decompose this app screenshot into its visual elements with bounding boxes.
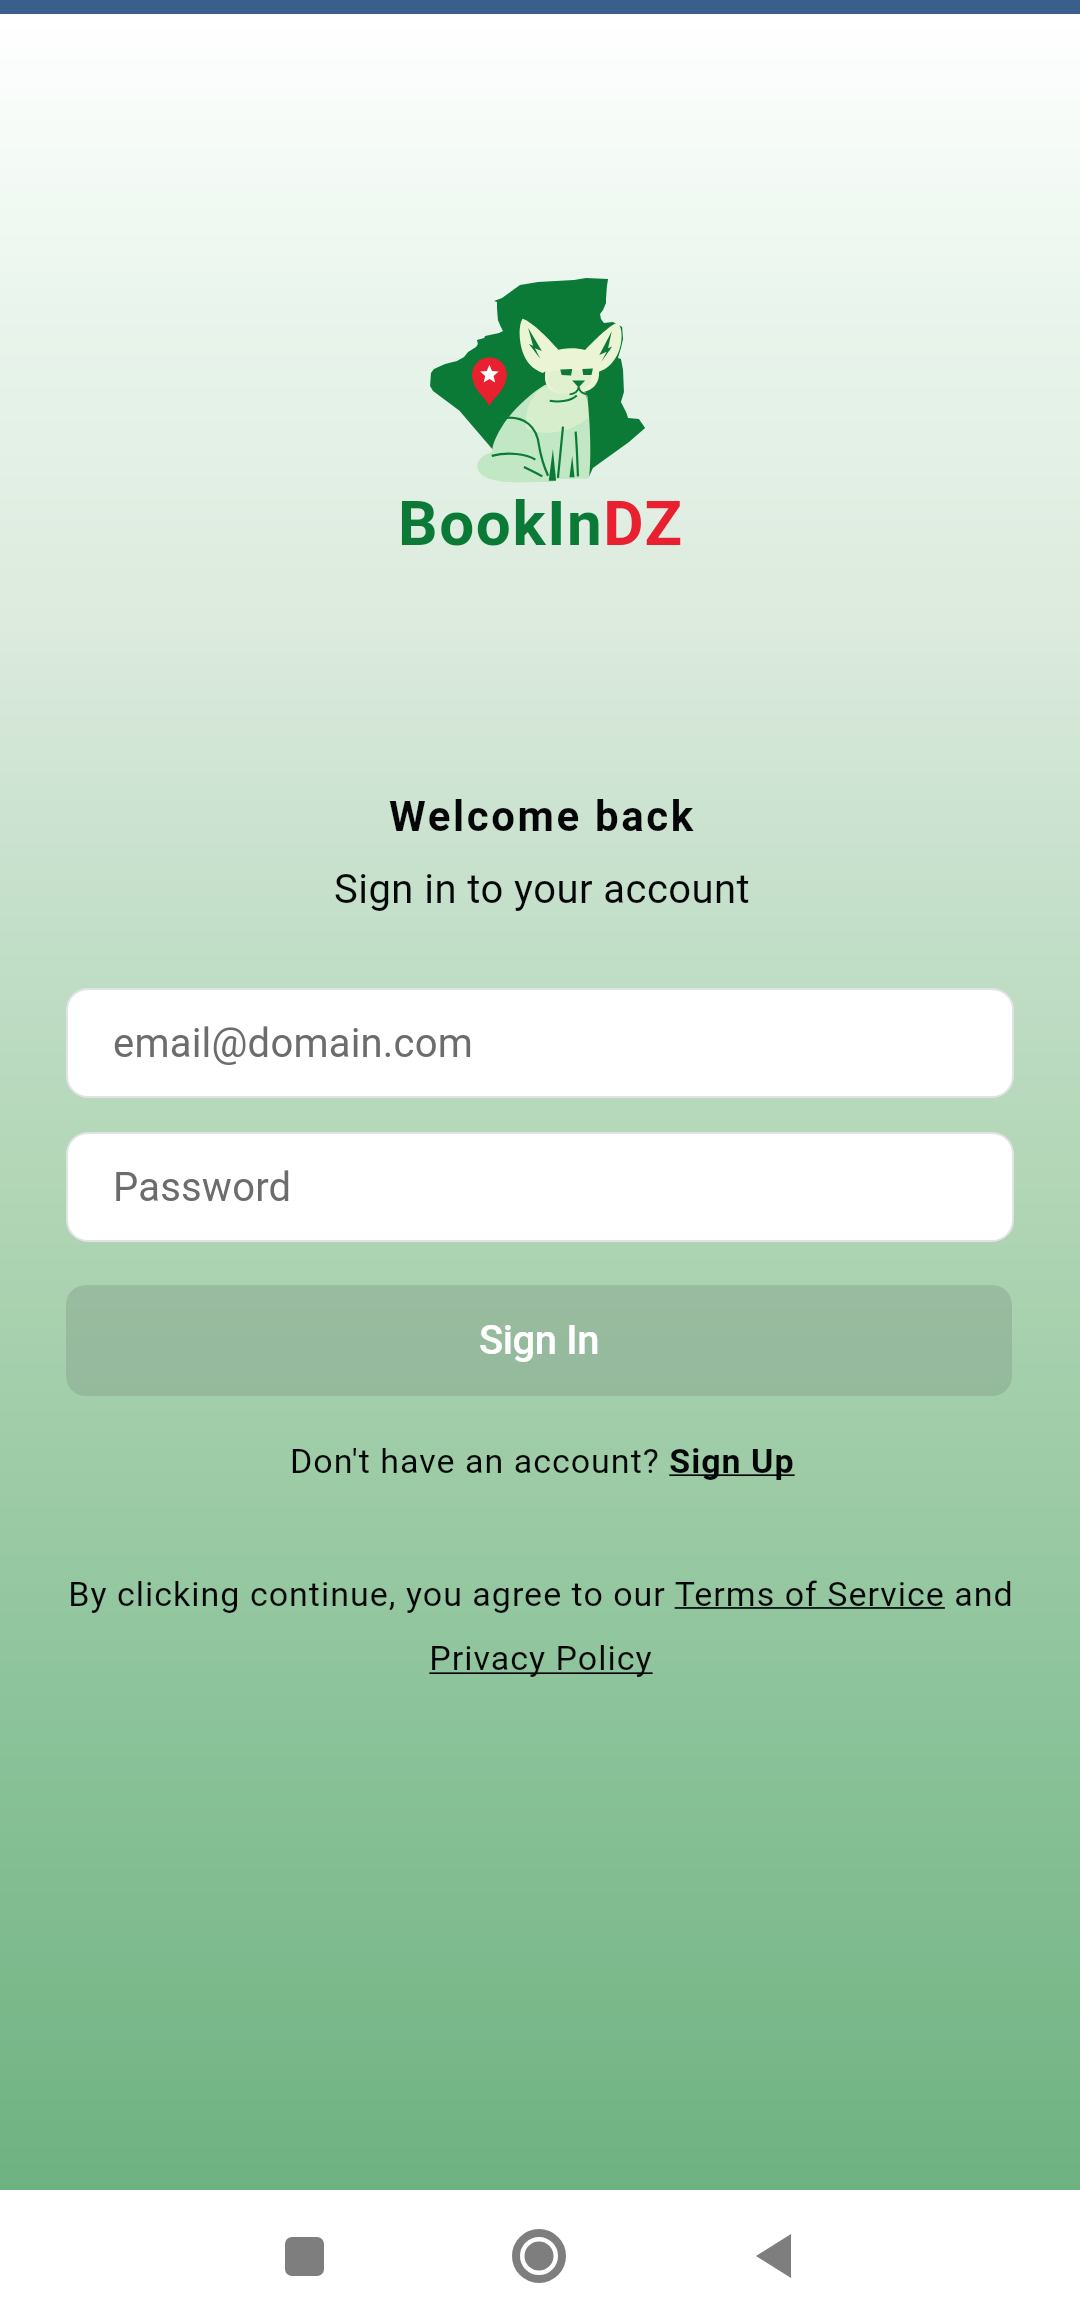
staticText: Sign in to your account: [334, 866, 751, 913]
staticText: By clicking continue, you agree to our T…: [56, 1574, 1026, 1679]
staticText: Sign In: [479, 1317, 600, 1364]
button[interactable]: Password: [68, 1134, 1012, 1240]
staticText: Welcome back: [389, 792, 696, 841]
button[interactable]: email@domain.com: [68, 990, 1012, 1096]
button[interactable]: Back: [725, 2208, 821, 2304]
button[interactable]: Sign In: [66, 1285, 1012, 1396]
staticText: Password: [113, 1164, 292, 1211]
staticText: BookInDZ: [398, 487, 684, 560]
button[interactable]: Home: [491, 2208, 587, 2304]
staticText: email@domain.com: [113, 1020, 474, 1067]
button[interactable]: Don't have an account? Sign Up: [290, 1441, 795, 1481]
button[interactable]: Recent apps: [256, 2208, 352, 2304]
staticText: Don't have an account? Sign Up: [290, 1441, 795, 1481]
